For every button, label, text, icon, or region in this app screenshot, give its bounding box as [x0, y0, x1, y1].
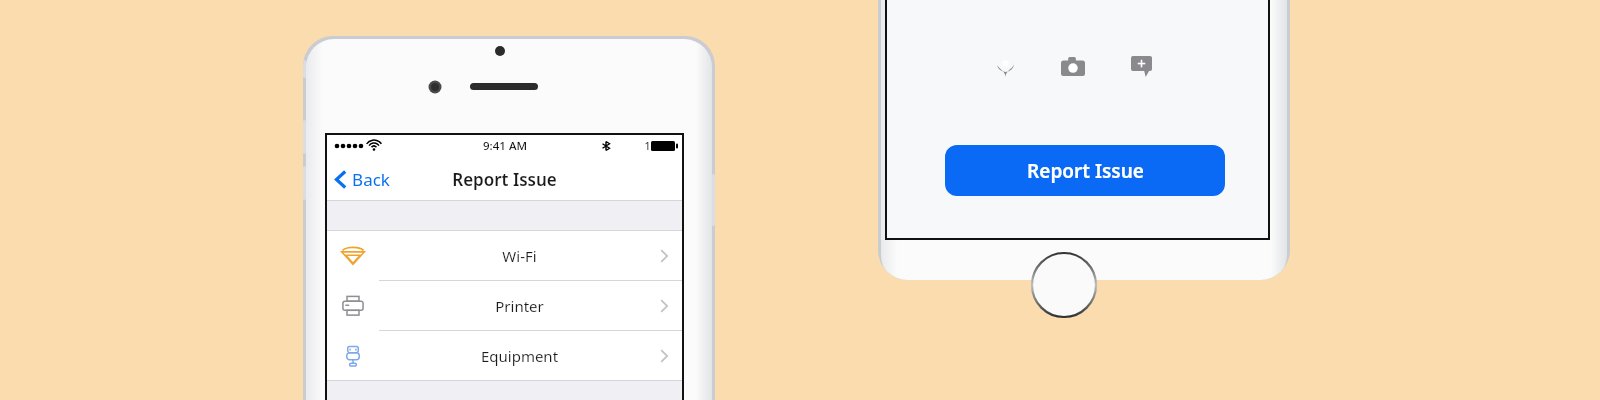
button[interactable]: Report Issue — [945, 145, 1225, 196]
staticText: 9:41 AM — [483, 138, 527, 154]
staticText: Report Issue — [1027, 158, 1144, 184]
button[interactable]: Printer — [327, 281, 682, 330]
staticText: 100% — [644, 138, 674, 154]
staticText: Equipment — [379, 346, 660, 366]
button[interactable]: Wi-Fi — [327, 231, 682, 280]
button[interactable]: Add location — [985, 46, 1025, 86]
button[interactable]: Back — [327, 157, 400, 201]
staticText: Back — [352, 168, 390, 191]
button[interactable]: Add comment — [1121, 46, 1161, 86]
staticText: Report Issue — [452, 168, 557, 191]
staticText: Wi-Fi — [379, 246, 660, 266]
button[interactable]: Equipment — [327, 331, 682, 380]
staticText: Printer — [379, 296, 660, 316]
button[interactable]: Add photo — [1053, 46, 1093, 86]
